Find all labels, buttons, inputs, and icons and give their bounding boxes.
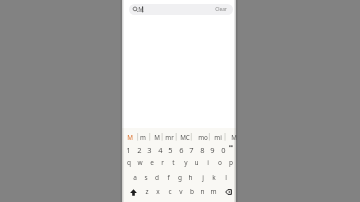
staticText: Clear [215,6,227,13]
staticText: mo [198,133,208,142]
button[interactable]: z [141,185,152,198]
staticText: g [178,173,182,182]
staticText: M [127,133,133,142]
button[interactable]: 2 [134,144,144,156]
staticText: MC [180,133,190,142]
button[interactable]: c [164,185,175,198]
button[interactable]: f [163,171,174,184]
button[interactable]: w [134,156,145,169]
staticText: j [202,173,204,182]
staticText: t [172,158,175,167]
staticText: mr [165,133,174,142]
staticText: d [155,173,159,182]
staticText: b [190,187,194,196]
button[interactable]: a [129,171,140,184]
staticText: u [194,158,199,167]
button[interactable]: 0 [218,144,228,156]
staticText: 7 [189,145,194,155]
staticText: 5 [168,145,173,155]
button[interactable]: h [185,171,196,184]
staticText: 8 [200,145,205,155]
button[interactable]: 9 [207,144,217,156]
button[interactable] [129,4,233,15]
button[interactable]: u [191,156,202,169]
staticText: p [229,158,233,167]
staticText: c [168,187,172,196]
staticText: e [150,158,154,167]
button[interactable]: MC [178,131,191,143]
staticText: l [225,173,227,182]
button[interactable] [226,143,236,153]
button[interactable]: M [229,131,238,143]
staticText: m [140,133,146,142]
button[interactable]: 5 [165,144,175,156]
staticText: 1 [126,145,131,155]
staticText: M [138,5,144,13]
button[interactable]: n [197,185,208,198]
button[interactable]: mr [163,131,175,143]
staticText: h [188,173,193,182]
button[interactable]: p [225,156,236,169]
staticText: q [127,158,131,167]
button[interactable]: m [137,131,148,143]
button[interactable]: q [123,156,134,169]
button[interactable] [222,186,236,198]
staticText: w [137,158,143,167]
staticText: o [218,158,222,167]
button[interactable]: e [146,156,157,169]
button[interactable]: t [168,156,179,169]
staticText: y [184,158,188,167]
button[interactable] [127,186,140,199]
button[interactable]: M [151,131,162,143]
button[interactable]: o [214,156,225,169]
button[interactable]: 6 [176,144,186,156]
staticText: n [200,187,205,196]
staticText: 4 [158,145,163,155]
staticText: v [179,187,183,196]
button[interactable]: M [123,131,136,143]
button[interactable]: Clear [212,4,230,14]
staticText: i [207,158,209,167]
staticText: m [210,187,217,196]
button[interactable]: m [208,185,219,198]
staticText: 6 [179,145,184,155]
button[interactable]: s [140,171,151,184]
staticText: 2 [137,145,142,155]
button[interactable]: r [157,156,168,169]
staticText: r [161,158,164,167]
staticText: z [145,187,149,196]
button[interactable]: 4 [155,144,165,156]
button[interactable]: y [180,156,191,169]
staticText: mi [214,133,222,142]
button[interactable]: 1 [123,144,133,156]
button[interactable]: l [220,171,231,184]
staticText: s [144,173,148,182]
staticText: k [212,173,216,182]
staticText: M [154,133,160,142]
button[interactable]: x [152,185,163,198]
button[interactable]: k [208,171,219,184]
button[interactable]: g [174,171,185,184]
staticText: a [133,173,137,182]
staticText: 0 [221,145,226,155]
staticText: x [156,187,160,196]
staticText: 3 [147,145,152,155]
button[interactable]: 8 [197,144,207,156]
staticText: f [167,173,170,182]
button[interactable]: v [175,185,186,198]
button[interactable]: j [197,171,208,184]
button[interactable]: i [202,156,213,169]
button[interactable]: 7 [186,144,196,156]
button[interactable]: b [186,185,197,198]
staticText: 9 [210,145,215,155]
button[interactable]: d [151,171,162,184]
button[interactable]: mi [211,131,224,143]
button[interactable]: mo [196,131,210,143]
button[interactable]: 3 [144,144,154,156]
staticText: M [231,133,237,142]
